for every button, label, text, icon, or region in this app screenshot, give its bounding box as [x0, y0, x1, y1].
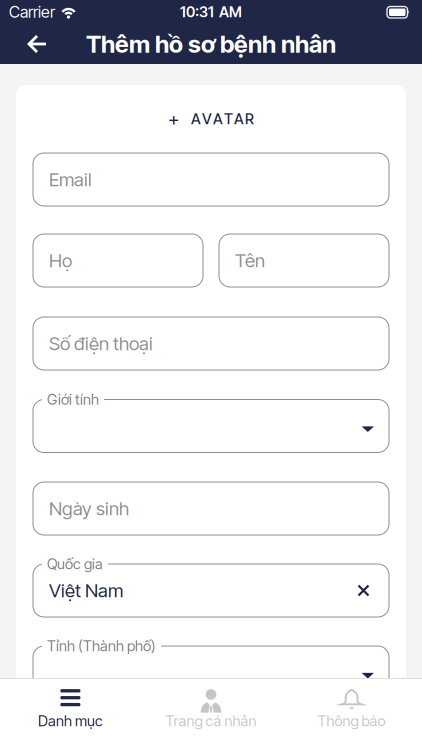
- button[interactable]: Giới tính: [33, 399, 389, 452]
- staticText: Danh mục: [38, 712, 103, 729]
- staticText: Carrier: [9, 3, 55, 21]
- staticText: Việt Nam: [49, 579, 123, 601]
- staticText: +: [168, 108, 179, 130]
- staticText: Giới tính: [47, 391, 99, 408]
- button[interactable]: +: [154, 104, 268, 134]
- button[interactable]: Thông báo: [281, 679, 422, 739]
- button[interactable]: Clear: [358, 585, 389, 596]
- staticText: Tỉnh (Thành phố): [47, 637, 156, 655]
- button[interactable]: Trang cá nhân: [141, 679, 281, 739]
- staticText: Số điện thoại: [49, 332, 153, 354]
- button[interactable]: Danh mục: [0, 679, 141, 739]
- staticText: Thêm hồ sơ bệnh nhân: [86, 30, 336, 58]
- staticText: Họ: [49, 249, 72, 271]
- staticText: Quốc gia: [47, 555, 103, 573]
- button[interactable]: Back: [0, 24, 47, 64]
- staticText: Thông báo: [318, 712, 386, 729]
- button[interactable]: Tỉnh (Thành phố): [33, 646, 389, 699]
- staticText: Trang cá nhân: [165, 712, 256, 729]
- staticText: Tên: [235, 249, 265, 271]
- staticText: A V A T A R: [191, 110, 254, 128]
- staticText: Email: [49, 168, 92, 190]
- staticText: 10:31 AM: [180, 3, 242, 21]
- staticText: Ngày sinh: [49, 497, 129, 519]
